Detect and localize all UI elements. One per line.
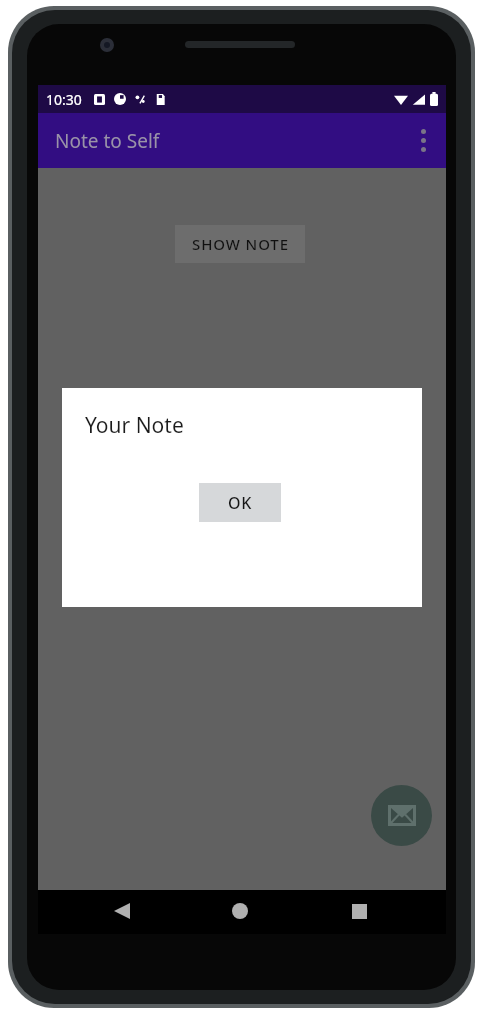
staticText: Note to Self: [55, 128, 160, 154]
staticText: 10:30: [46, 90, 82, 109]
staticText: Your Note: [85, 411, 184, 440]
button[interactable]: Back: [102, 890, 483, 934]
button[interactable]: Send note by email: [371, 785, 432, 846]
button[interactable]: OK: [199, 483, 281, 522]
button[interactable]: More options: [400, 113, 446, 168]
staticText: SHOW NOTE: [192, 234, 289, 254]
staticText: OK: [228, 492, 253, 514]
button[interactable]: SHOW NOTE: [175, 225, 305, 263]
button[interactable]: Home: [232, 903, 248, 919]
